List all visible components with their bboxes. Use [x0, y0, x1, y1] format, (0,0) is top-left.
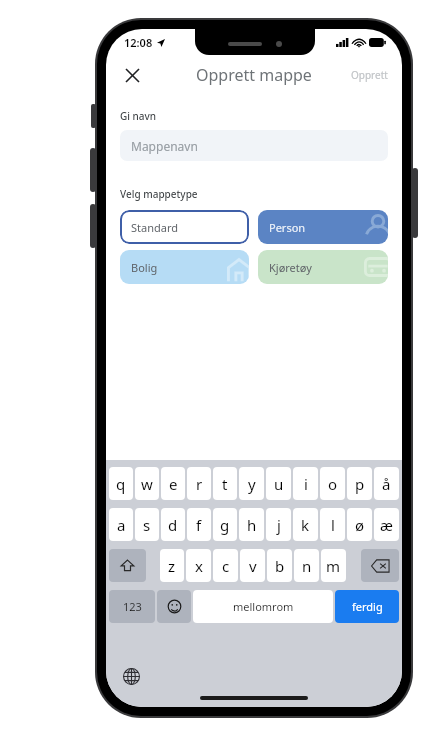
- button[interactable]: Mappenavn: [120, 130, 388, 161]
- button[interactable]: Emoji: [157, 590, 191, 623]
- staticText: w: [141, 474, 153, 494]
- staticText: d: [168, 515, 178, 535]
- button[interactable]: Bytt språk: [118, 663, 144, 689]
- button[interactable]: k: [293, 508, 318, 541]
- staticText: e: [169, 474, 178, 494]
- staticText: l: [331, 515, 335, 535]
- staticText: Opprett: [351, 68, 388, 82]
- staticText: g: [220, 515, 230, 535]
- staticText: n: [302, 556, 312, 576]
- staticText: mellomrom: [233, 599, 294, 614]
- button[interactable]: r: [187, 467, 211, 500]
- staticText: t: [222, 474, 228, 494]
- staticText: a: [117, 515, 126, 535]
- button[interactable]: Slett: [361, 549, 399, 582]
- staticText: q: [116, 474, 126, 494]
- staticText: o: [328, 474, 338, 494]
- staticText: Mappenavn: [131, 138, 198, 154]
- button[interactable]: o: [320, 467, 345, 500]
- staticText: f: [196, 515, 202, 535]
- button[interactable]: i: [293, 467, 318, 500]
- button[interactable]: j: [266, 508, 291, 541]
- staticText: k: [301, 515, 310, 535]
- staticText: 123: [123, 599, 142, 614]
- button[interactable]: v: [240, 549, 265, 582]
- staticText: å: [382, 474, 391, 494]
- staticText: z: [168, 556, 176, 576]
- button[interactable]: m: [321, 549, 346, 582]
- staticText: p: [355, 474, 365, 494]
- staticText: b: [275, 556, 285, 576]
- staticText: r: [196, 474, 203, 494]
- button[interactable]: u: [266, 467, 291, 500]
- staticText: j: [277, 515, 281, 535]
- staticText: m: [326, 556, 341, 576]
- button[interactable]: y: [239, 467, 264, 500]
- button[interactable]: Standard: [120, 210, 249, 244]
- button[interactable]: mellomrom: [193, 590, 333, 623]
- button[interactable]: n: [294, 549, 319, 582]
- button[interactable]: q: [109, 467, 133, 500]
- button[interactable]: Lukk: [116, 59, 148, 91]
- button[interactable]: l: [320, 508, 345, 541]
- staticText: Bolig: [131, 260, 158, 275]
- button[interactable]: ferdig: [335, 590, 399, 623]
- staticText: y: [248, 474, 256, 494]
- button[interactable]: g: [213, 508, 237, 541]
- staticText: Person: [269, 220, 306, 235]
- staticText: c: [222, 556, 230, 576]
- staticText: Gi navn: [120, 109, 157, 123]
- staticText: 12:08: [124, 35, 153, 50]
- staticText: s: [143, 515, 151, 535]
- button[interactable]: c: [213, 549, 238, 582]
- staticText: x: [195, 556, 203, 576]
- button[interactable]: æ: [374, 508, 399, 541]
- button[interactable]: w: [135, 467, 159, 500]
- staticText: Opprett mappe: [196, 64, 312, 86]
- button[interactable]: Person: [258, 210, 388, 244]
- button[interactable]: t: [213, 467, 237, 500]
- staticText: Kjøretøy: [269, 260, 312, 275]
- button[interactable]: a: [109, 508, 133, 541]
- button[interactable]: e: [161, 467, 185, 500]
- staticText: i: [304, 474, 308, 494]
- button[interactable]: 123: [109, 590, 155, 623]
- button[interactable]: d: [161, 508, 185, 541]
- button[interactable]: ø: [347, 508, 372, 541]
- staticText: Velg mappetype: [120, 187, 198, 201]
- staticText: Standard: [131, 220, 179, 235]
- staticText: v: [249, 556, 257, 576]
- button[interactable]: å: [374, 467, 399, 500]
- button[interactable]: h: [239, 508, 264, 541]
- button[interactable]: Skift: [109, 549, 146, 582]
- button[interactable]: Kjøretøy: [258, 250, 388, 284]
- button[interactable]: b: [267, 549, 292, 582]
- staticText: ferdig: [352, 599, 383, 614]
- button[interactable]: p: [347, 467, 372, 500]
- staticText: h: [247, 515, 257, 535]
- button[interactable]: Opprett: [349, 62, 390, 88]
- button[interactable]: x: [186, 549, 211, 582]
- button[interactable]: z: [160, 549, 184, 582]
- button[interactable]: f: [187, 508, 211, 541]
- button[interactable]: Bolig: [120, 250, 249, 284]
- staticText: u: [274, 474, 284, 494]
- button[interactable]: s: [135, 508, 159, 541]
- staticText: æ: [380, 515, 393, 535]
- staticText: ø: [355, 515, 365, 535]
